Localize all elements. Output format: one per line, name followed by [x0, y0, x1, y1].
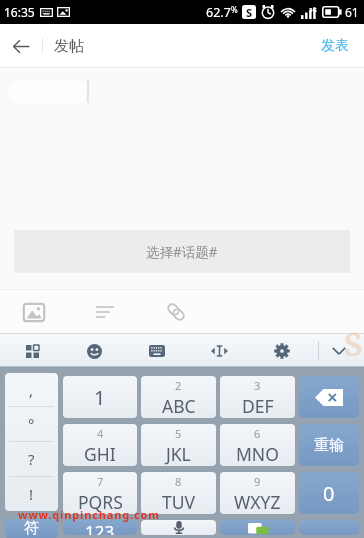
staticText: ? — [28, 449, 35, 469]
button[interactable]: Add image — [15, 293, 53, 331]
button[interactable]: Apps — [16, 335, 48, 367]
staticText: PQRS — [78, 490, 123, 514]
staticText: 0 — [323, 480, 335, 507]
button[interactable]: Move cursor — [203, 335, 235, 367]
button[interactable]: ° — [5, 407, 58, 441]
button[interactable]: Enter — [299, 520, 359, 535]
staticText: 发表 — [321, 37, 349, 55]
button[interactable]: 3 — [220, 376, 295, 418]
button[interactable]: Emoji — [78, 335, 110, 367]
staticText: 1 — [94, 384, 106, 411]
button[interactable]: 8 — [141, 472, 216, 514]
button[interactable]: 4 — [63, 424, 137, 466]
button[interactable]: Settings — [266, 335, 298, 367]
button[interactable]: 6 — [220, 424, 295, 466]
button[interactable]: Clear — [299, 424, 359, 466]
staticText: 61 — [345, 4, 359, 20]
staticText: 16:35 — [4, 4, 35, 20]
button[interactable]: 符 — [5, 519, 58, 538]
button[interactable]: Zero — [299, 472, 359, 514]
staticText: 选择#话题# — [146, 243, 218, 261]
button[interactable]: 1 — [63, 376, 137, 418]
button[interactable]: 发表 — [306, 24, 364, 68]
staticText: 发帖 — [54, 37, 84, 56]
staticText: S — [344, 322, 363, 366]
staticText: 5 — [175, 426, 182, 441]
staticText: www.qinpinchang.com — [18, 507, 160, 522]
staticText: 8 — [175, 474, 182, 489]
button[interactable]: 5 — [141, 424, 216, 466]
button[interactable]: 选择#话题# — [14, 230, 350, 273]
button[interactable]: Insert link — [157, 293, 195, 331]
staticText: ! — [29, 484, 34, 504]
button[interactable]: 9 — [220, 472, 295, 514]
button[interactable]: Back — [0, 24, 42, 68]
staticText: % — [231, 4, 238, 15]
staticText: GHI — [84, 442, 116, 466]
staticText: DEF — [242, 394, 274, 418]
staticText: 3 — [254, 378, 261, 393]
staticText: 62.7 — [206, 4, 231, 21]
staticText: 3G — [309, 6, 317, 14]
button[interactable]: Backspace — [299, 376, 359, 418]
staticText: 7 — [97, 474, 104, 489]
button[interactable]: Voice input — [141, 520, 216, 535]
staticText: S — [246, 5, 253, 19]
staticText: 重输 — [314, 436, 344, 455]
staticText: WXYZ — [234, 490, 281, 514]
staticText: 123 — [85, 520, 115, 535]
staticText: 符 — [24, 519, 39, 538]
staticText: JKL — [166, 442, 191, 466]
button[interactable]: Language — [220, 520, 295, 535]
staticText: ABC — [162, 394, 196, 418]
button[interactable]: ? — [5, 442, 58, 476]
button[interactable]: 2 — [141, 376, 216, 418]
staticText: TUV — [162, 490, 196, 514]
staticText: 6 — [254, 426, 261, 441]
button[interactable]: Numbers — [63, 520, 137, 535]
button[interactable]: 7 — [63, 472, 137, 514]
staticText: MNO — [236, 442, 279, 466]
staticText: , — [29, 380, 34, 400]
button[interactable]: ! — [5, 477, 58, 511]
staticText: 9 — [254, 474, 261, 489]
button[interactable]: Keyboard — [141, 335, 173, 367]
button[interactable]: Format list — [86, 293, 124, 331]
staticText: 4 — [97, 426, 104, 441]
staticText: ° — [28, 414, 35, 434]
button[interactable]: , — [5, 373, 58, 406]
button[interactable]: Hide keyboard — [323, 335, 355, 367]
staticText: 2 — [175, 378, 182, 393]
